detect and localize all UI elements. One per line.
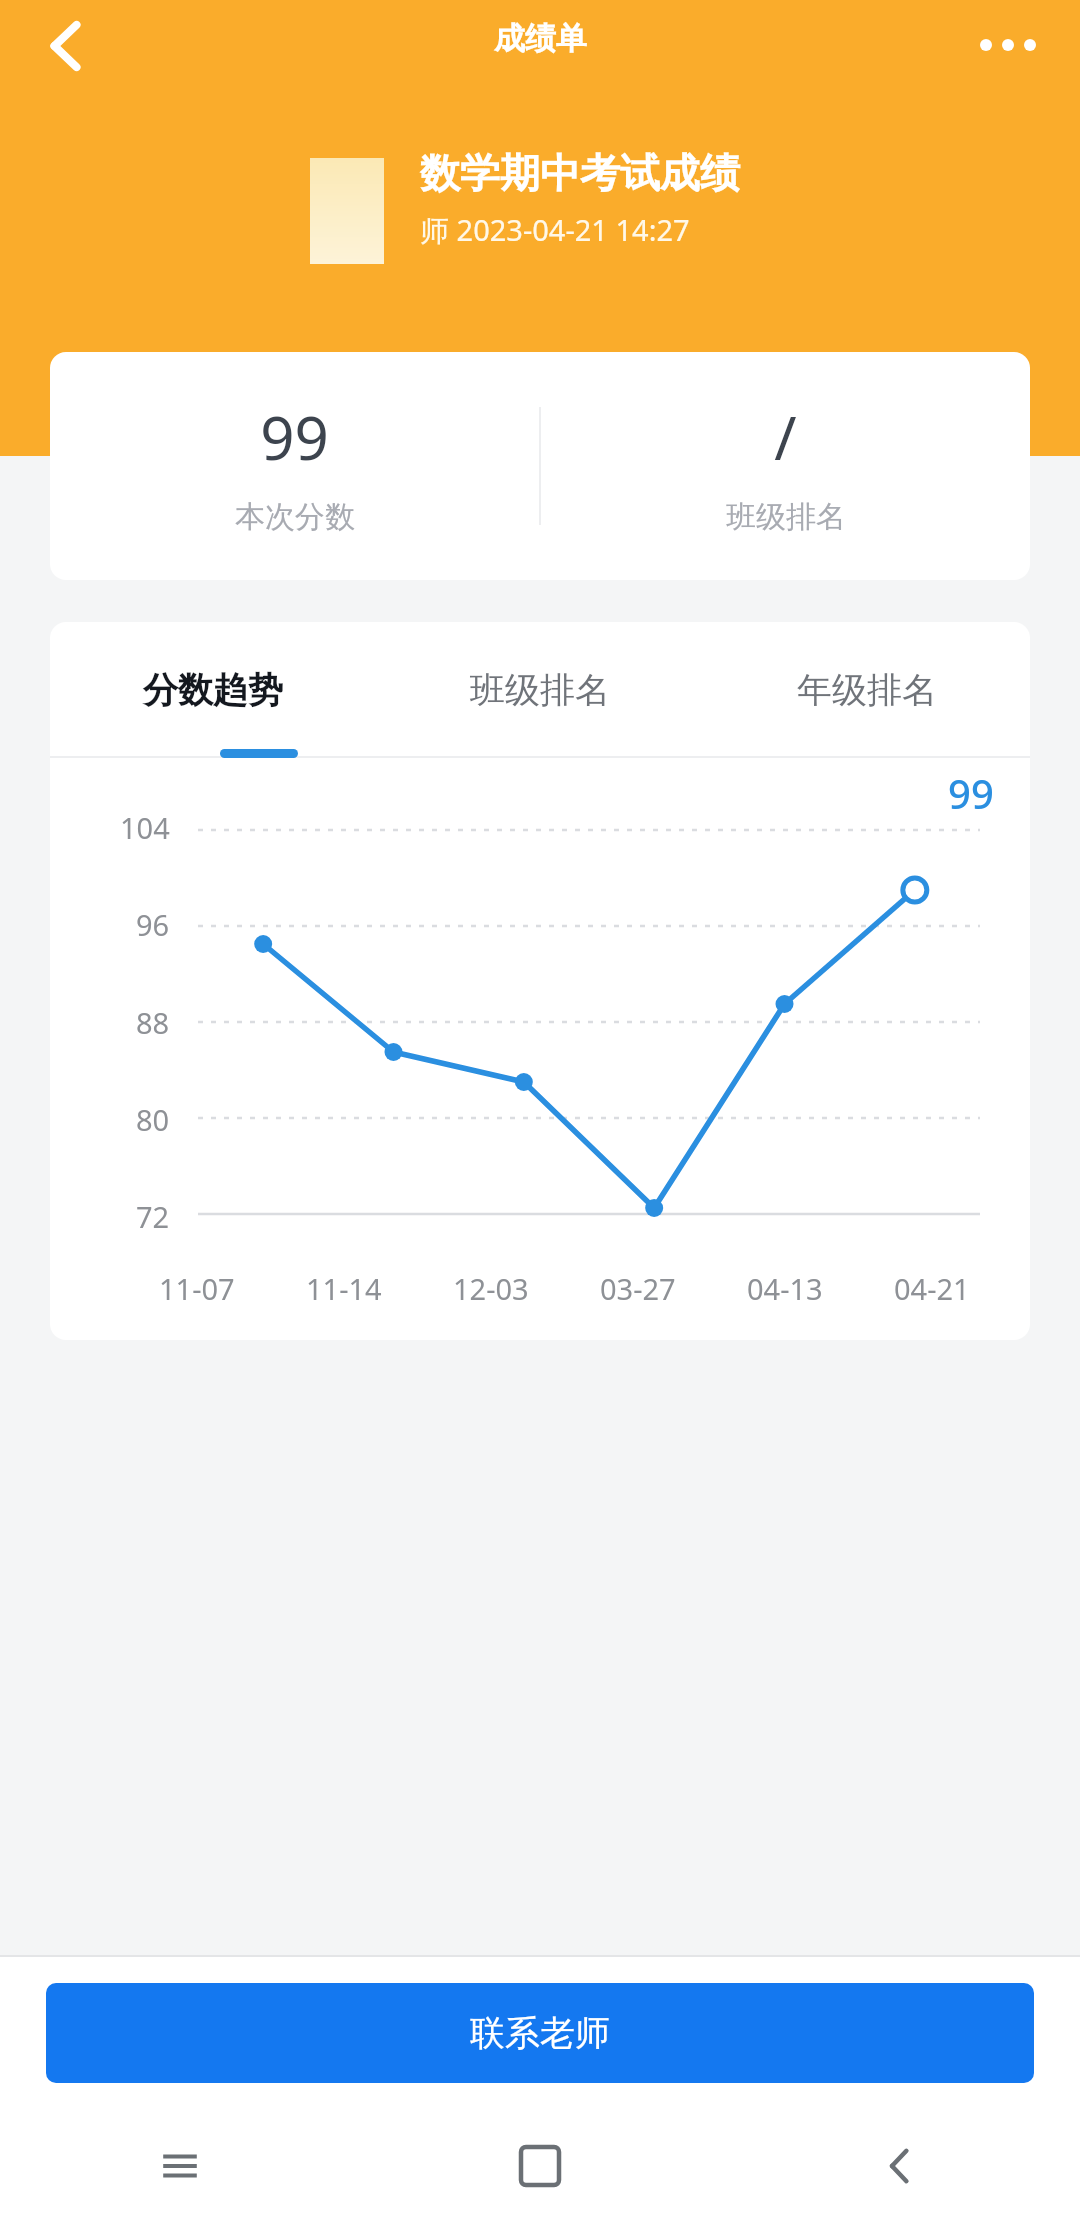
button[interactable]: 年级排名 <box>703 622 1030 758</box>
button[interactable]: 分数趋势 <box>50 622 376 758</box>
button[interactable]: 班级排名 <box>376 622 703 758</box>
staticText: 班级排名 <box>470 668 610 712</box>
staticText: 03-27 <box>600 1269 676 1308</box>
staticText: 本次分数 <box>235 498 355 536</box>
button[interactable]: Recents <box>0 2111 360 2221</box>
staticText: 12-03 <box>453 1269 529 1308</box>
staticText: 11-07 <box>159 1269 235 1308</box>
staticText: 年级排名 <box>797 668 937 712</box>
staticText: 成绩单 <box>494 19 587 58</box>
staticText: 师 2023-04-21 14:27 <box>420 210 690 250</box>
staticText: 04-13 <box>747 1269 823 1308</box>
button[interactable]: / <box>541 352 1030 580</box>
button[interactable]: 联系老师 <box>46 1983 1034 2083</box>
staticText: 11-14 <box>306 1269 382 1308</box>
staticText: 班级排名 <box>726 498 846 536</box>
staticText: 分数趋势 <box>143 668 283 712</box>
staticText: 104 <box>120 808 170 847</box>
staticText: 联系老师 <box>470 2011 610 2055</box>
staticText: 99 <box>260 396 329 478</box>
button[interactable]: 99 <box>50 352 539 580</box>
staticText: 99 <box>948 766 994 820</box>
staticText: 88 <box>136 1003 170 1042</box>
staticText: 80 <box>136 1100 170 1139</box>
staticText: / <box>774 396 797 478</box>
button[interactable]: Home <box>360 2111 720 2221</box>
staticText: 96 <box>136 905 170 944</box>
button[interactable]: Back <box>720 2111 1080 2221</box>
button[interactable]: More options <box>960 18 1056 72</box>
staticText: 72 <box>136 1197 170 1236</box>
staticText: 04-21 <box>894 1269 970 1308</box>
staticText: 数学期中考试成绩 <box>420 148 740 198</box>
button[interactable]: Back <box>22 2 110 90</box>
